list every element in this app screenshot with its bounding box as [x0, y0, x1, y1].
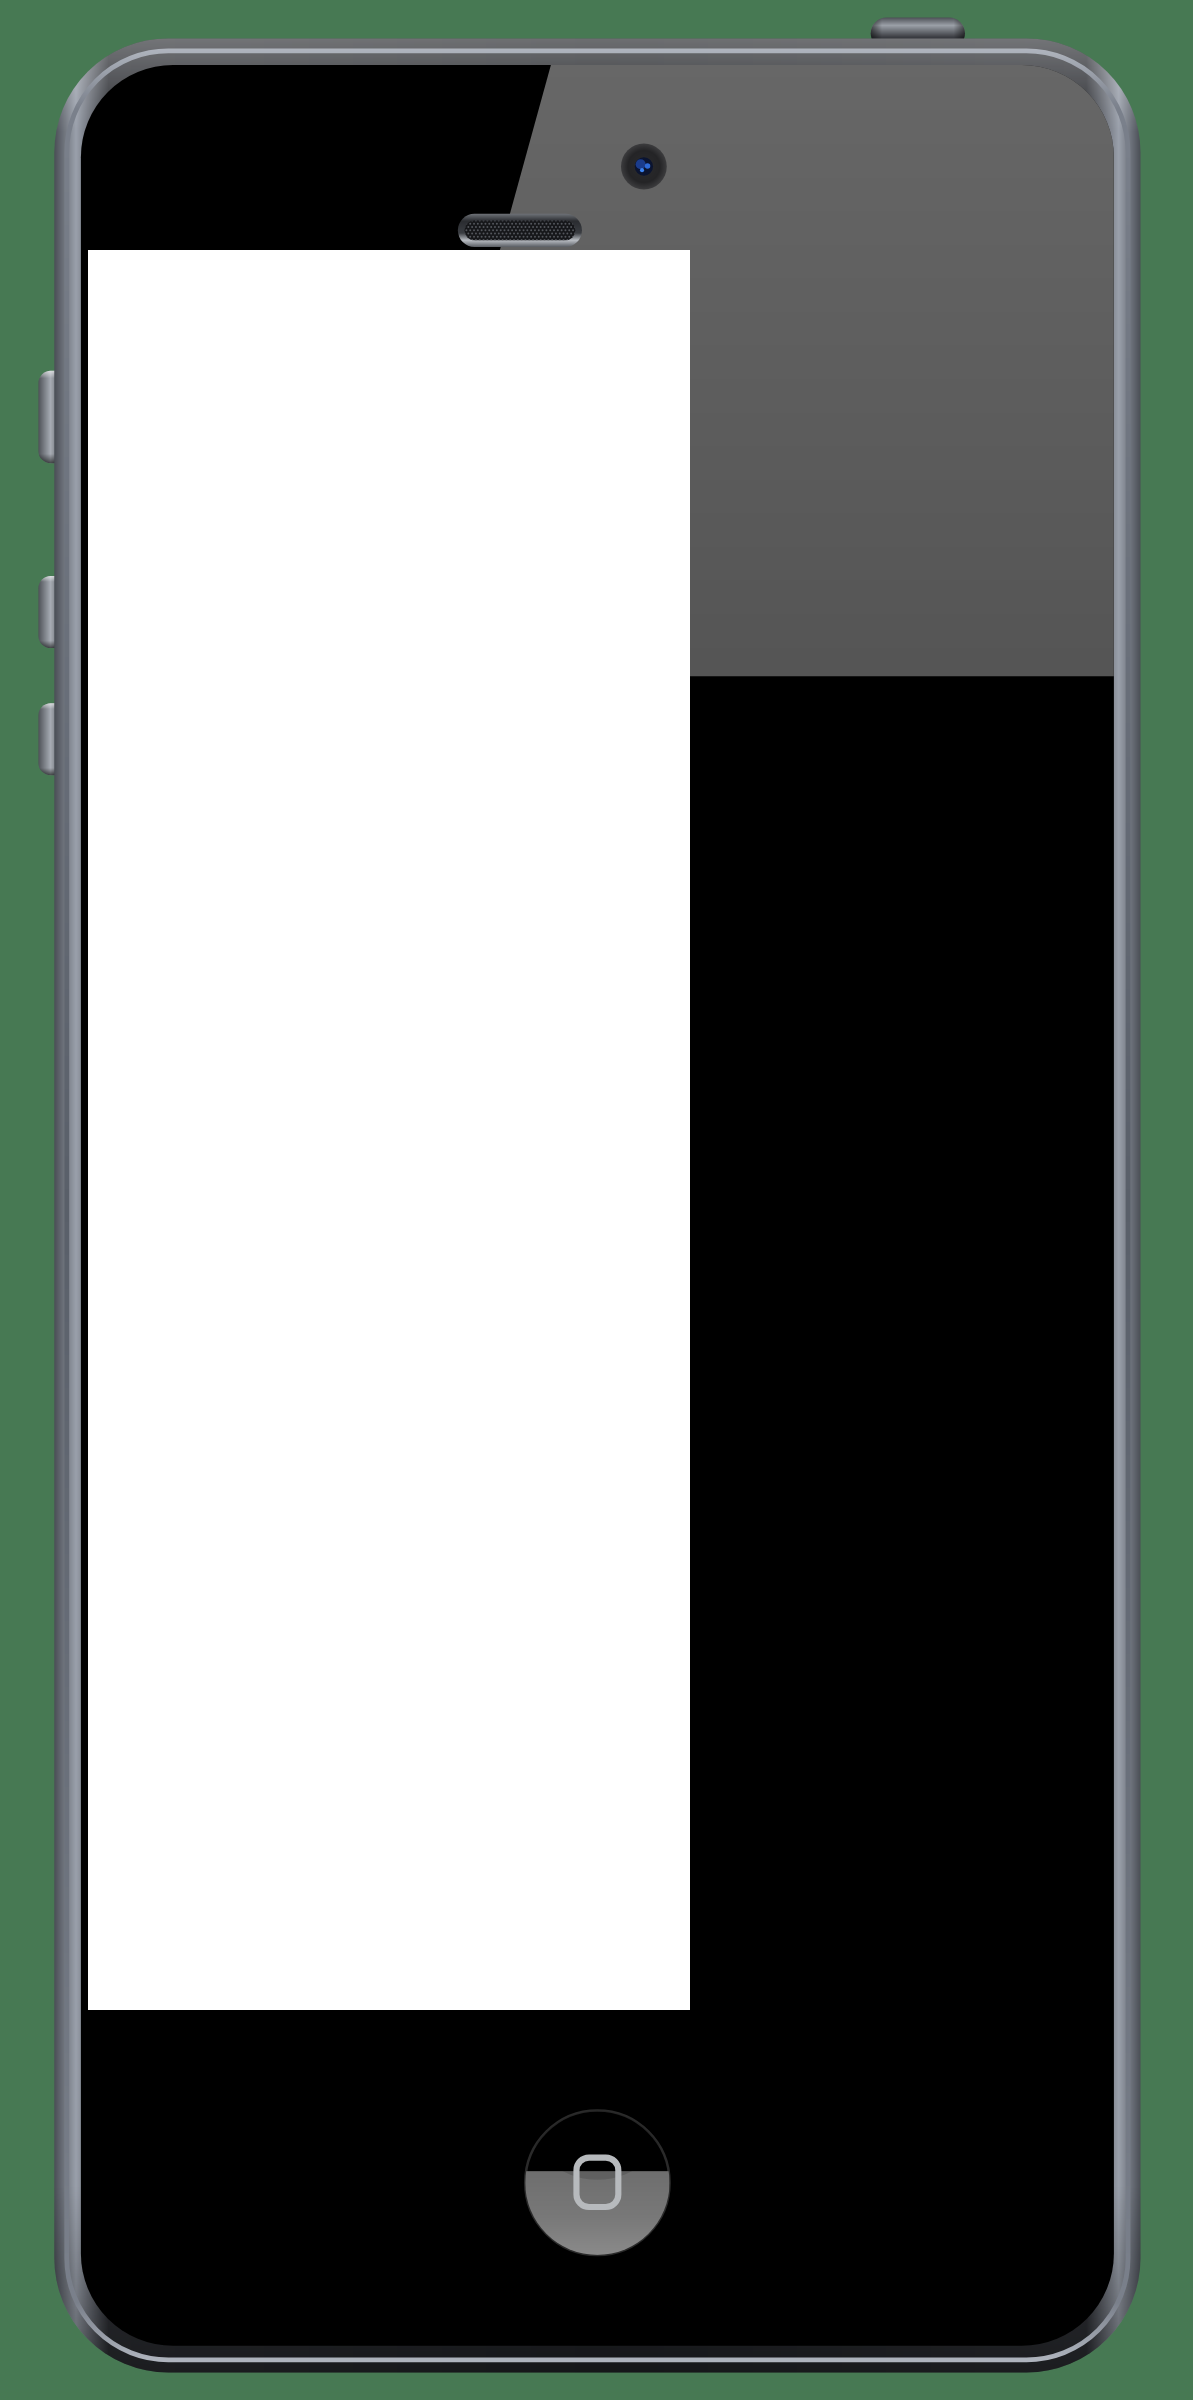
button[interactable]: Phone screen: [0, 0, 1193, 2400]
